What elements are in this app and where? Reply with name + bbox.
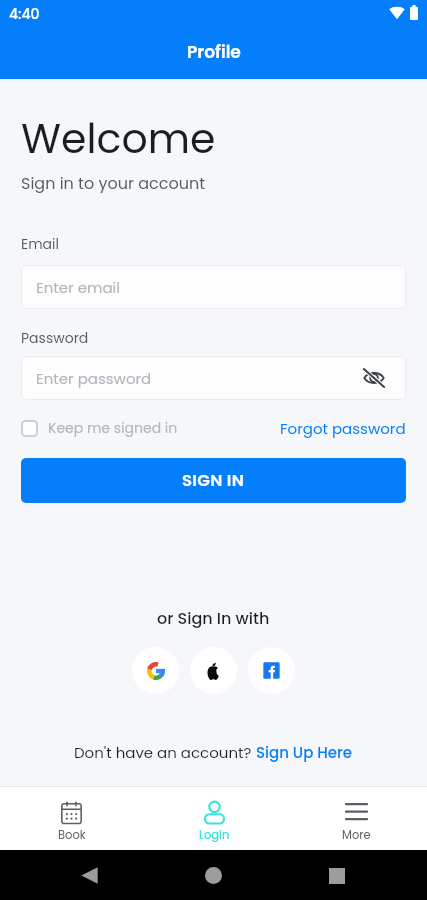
button[interactable]: Keep me signed in	[21, 418, 178, 438]
staticText: 4:40	[9, 4, 40, 24]
button[interactable]: Enter password	[21, 356, 406, 400]
staticText: Sign Up Here	[256, 742, 353, 763]
staticText: Forgot password	[280, 418, 406, 438]
button[interactable]: More	[285, 793, 427, 843]
staticText: Sign in to your account	[21, 172, 205, 194]
staticText: Keep me signed in	[48, 418, 178, 438]
staticText: or Sign In with	[157, 607, 270, 629]
other: Back	[81, 867, 98, 884]
staticText: Enter email	[36, 277, 120, 298]
staticText: Email	[21, 234, 59, 254]
staticText: Enter password	[36, 368, 152, 389]
button[interactable]: Enter email	[21, 265, 406, 309]
other: Show password	[363, 369, 385, 387]
staticText: Password	[21, 328, 89, 348]
staticText: More	[342, 827, 371, 843]
button[interactable]: Login	[143, 793, 285, 843]
staticText: Profile	[187, 40, 241, 64]
button[interactable]: SIGN IN	[21, 458, 406, 503]
staticText: Welcome	[21, 110, 216, 167]
button[interactable]: Book	[0, 793, 143, 843]
button[interactable]: Sign Up Here	[256, 742, 353, 763]
staticText: SIGN IN	[182, 469, 245, 492]
button[interactable]: Sign in with Facebook	[248, 647, 295, 694]
button[interactable]: Sign in with Google	[132, 647, 179, 694]
other: Home	[205, 867, 222, 884]
staticText: Book	[58, 827, 86, 843]
button[interactable]: Sign in with Apple	[190, 647, 237, 694]
staticText: Login	[199, 827, 230, 843]
staticText: Don't have an account?	[74, 742, 256, 763]
button[interactable]: Forgot password	[280, 418, 406, 438]
